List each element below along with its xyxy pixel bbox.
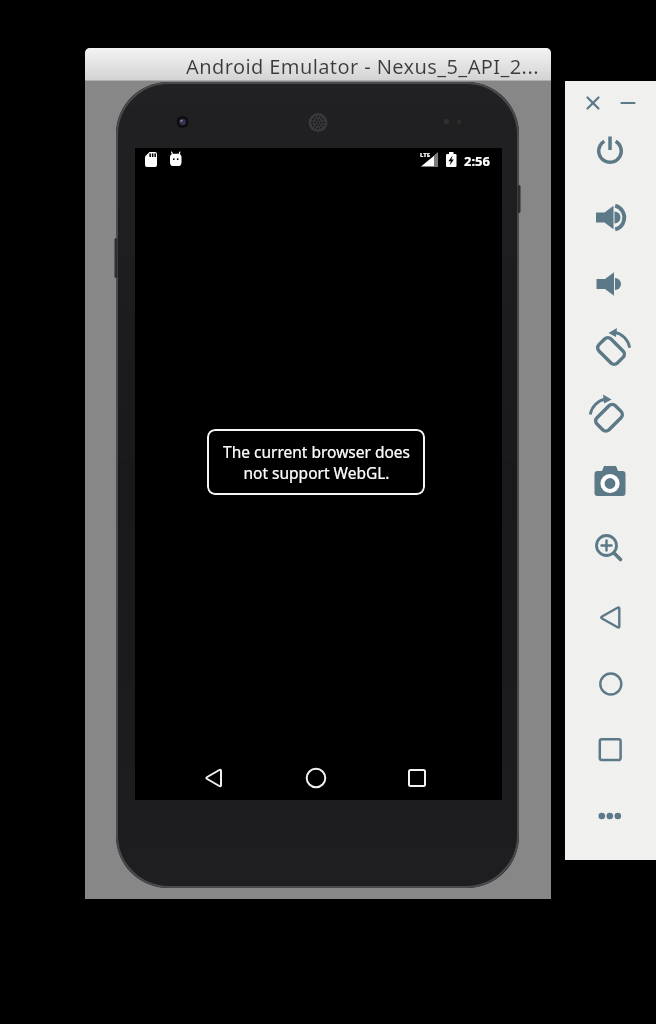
- staticText: LTE: [420, 151, 431, 159]
- staticText: The current browser does not support Web…: [223, 441, 410, 483]
- button[interactable]: [565, 81, 656, 860]
- button[interactable]: The current browser does not support Web…: [207, 429, 425, 495]
- staticText: Android Emulator - Nexus_5_API_2...: [186, 53, 539, 80]
- button[interactable]: [85, 48, 551, 81]
- staticText: 2:56: [464, 152, 490, 170]
